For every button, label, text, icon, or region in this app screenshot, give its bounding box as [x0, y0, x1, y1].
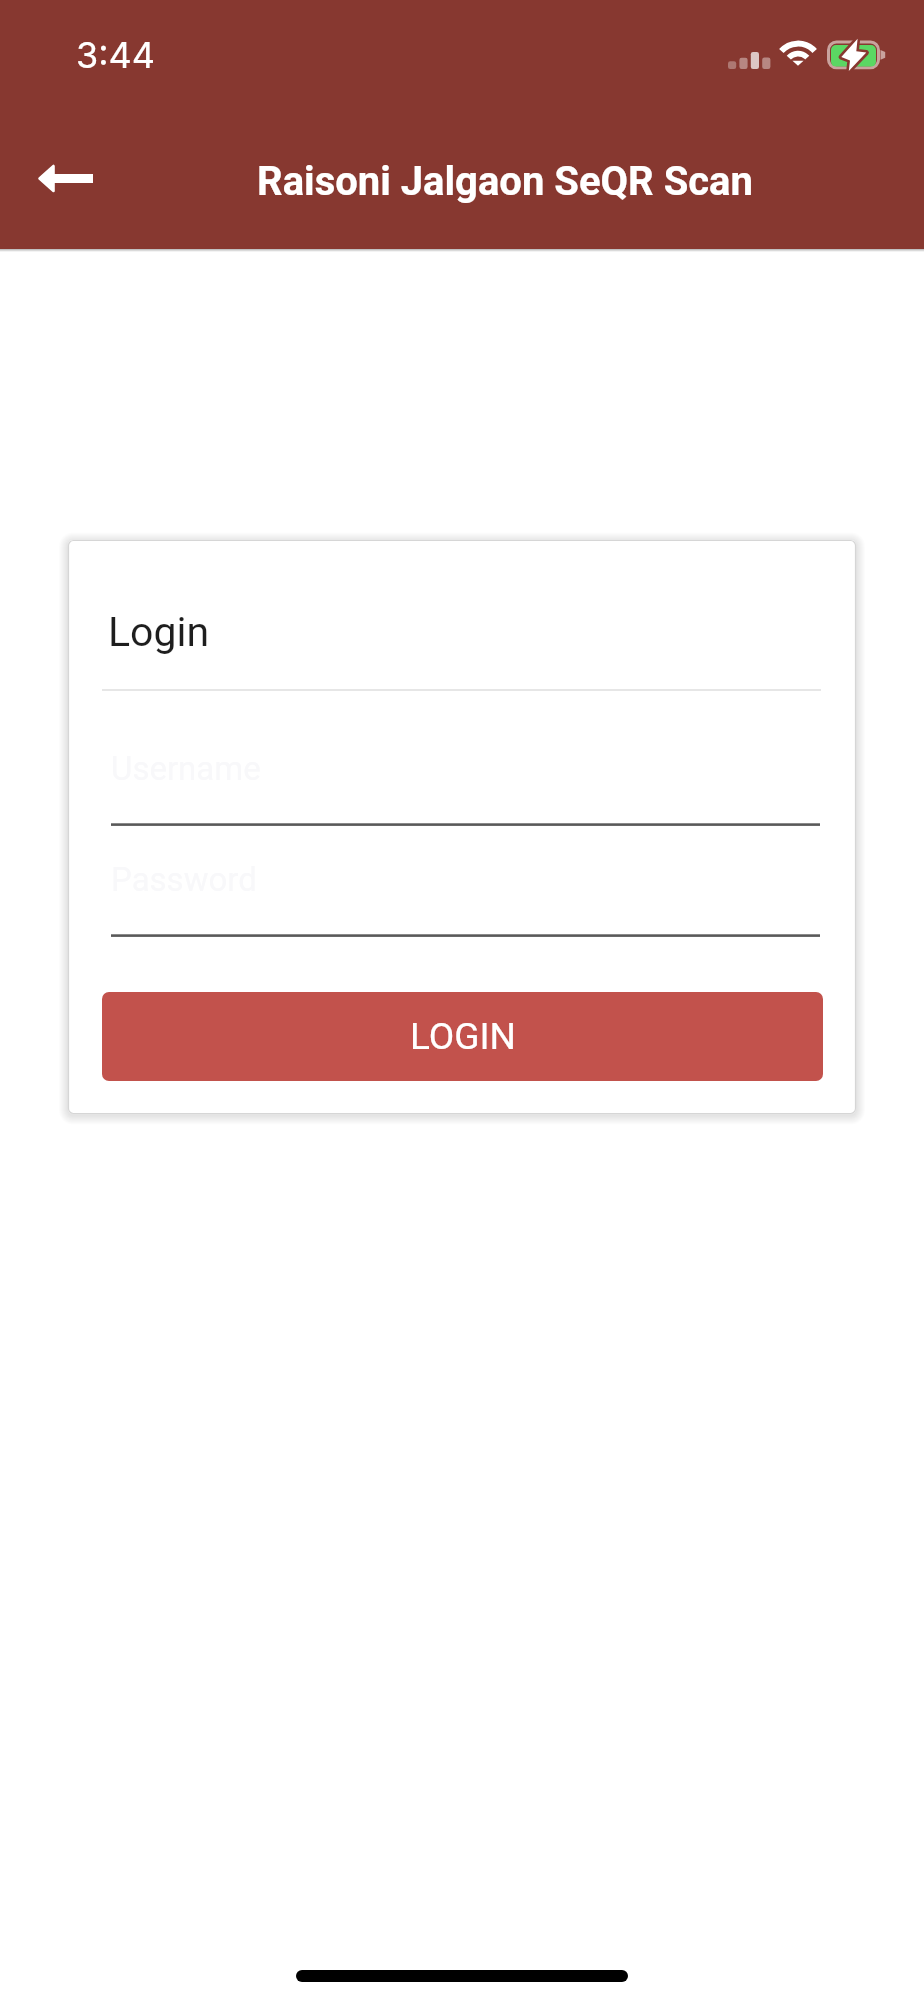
button[interactable]: Back	[20, 132, 112, 224]
staticText: 3:44	[76, 33, 156, 77]
staticText: Raisoni Jalgaon SeQR Scan	[86, 158, 924, 205]
button[interactable]: Password	[111, 860, 820, 937]
staticText: Login	[108, 608, 210, 656]
staticText: LOGIN	[410, 1015, 516, 1058]
button[interactable]: Username	[111, 749, 820, 826]
button[interactable]: LOGIN	[102, 992, 823, 1081]
